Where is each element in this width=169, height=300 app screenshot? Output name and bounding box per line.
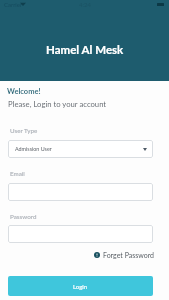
staticText: Please, Login to your account: [8, 99, 107, 108]
staticText: Forget Password: [103, 251, 155, 259]
staticText: Admission User: [15, 146, 52, 152]
button[interactable]: Admission User: [8, 140, 153, 158]
staticText: Login: [73, 283, 88, 290]
button[interactable]: Email: [8, 183, 153, 201]
staticText: User Type: [10, 127, 38, 135]
staticText: Password: [10, 213, 37, 221]
button[interactable]: Forget Password: [92, 249, 157, 261]
button[interactable]: Login: [8, 276, 153, 296]
staticText: Carrier: [4, 1, 23, 8]
button[interactable]: Password: [8, 225, 153, 243]
staticText: Email: [10, 170, 25, 178]
staticText: Hamel Al Mesk: [46, 43, 124, 57]
staticText: Welcome!: [7, 87, 41, 96]
